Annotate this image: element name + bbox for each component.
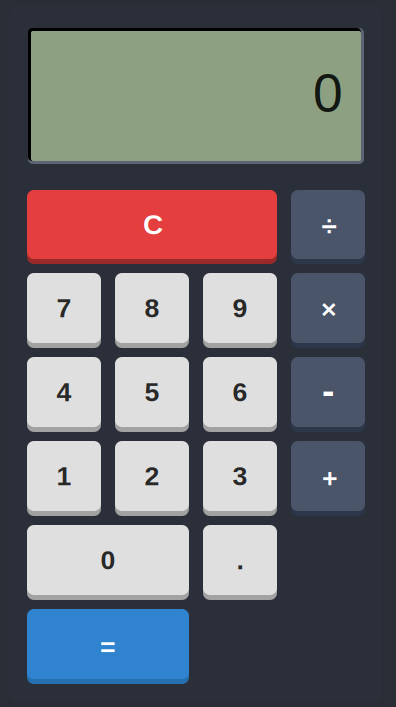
button[interactable]: Clear <box>27 190 277 264</box>
staticText: + <box>322 463 338 493</box>
staticText: 8 <box>144 293 159 323</box>
button[interactable]: 9 <box>203 273 277 348</box>
staticText: - <box>322 369 334 411</box>
staticText: . <box>236 545 243 575</box>
staticText: × <box>321 294 337 324</box>
staticText: 6 <box>232 377 247 407</box>
button[interactable]: Divide <box>291 190 365 264</box>
button[interactable]: Plus <box>291 441 365 516</box>
button[interactable]: 7 <box>27 273 101 348</box>
staticText: C <box>143 209 163 240</box>
staticText: = <box>100 632 116 662</box>
staticText: 0 <box>100 545 115 575</box>
staticText: 9 <box>232 293 247 323</box>
button[interactable]: 4 <box>27 357 101 432</box>
staticText: 7 <box>56 293 71 323</box>
staticText: 4 <box>56 377 71 407</box>
button[interactable]: 1 <box>27 441 101 516</box>
button[interactable]: 5 <box>115 357 189 432</box>
staticText: ÷ <box>321 210 336 241</box>
button[interactable]: 2 <box>115 441 189 516</box>
button[interactable]: 0 <box>27 525 189 600</box>
button[interactable]: 6 <box>203 357 277 432</box>
button[interactable]: Minus <box>291 357 365 432</box>
staticText: 0 <box>313 63 343 123</box>
button[interactable]: Multiply <box>291 273 365 348</box>
button[interactable]: 3 <box>203 441 277 516</box>
button[interactable]: Decimal point <box>203 525 277 600</box>
staticText: 1 <box>56 461 71 491</box>
staticText: 2 <box>144 461 159 491</box>
staticText: 3 <box>232 461 247 491</box>
button[interactable]: Equals <box>27 609 189 684</box>
button[interactable]: 8 <box>115 273 189 348</box>
staticText: 5 <box>144 377 159 407</box>
